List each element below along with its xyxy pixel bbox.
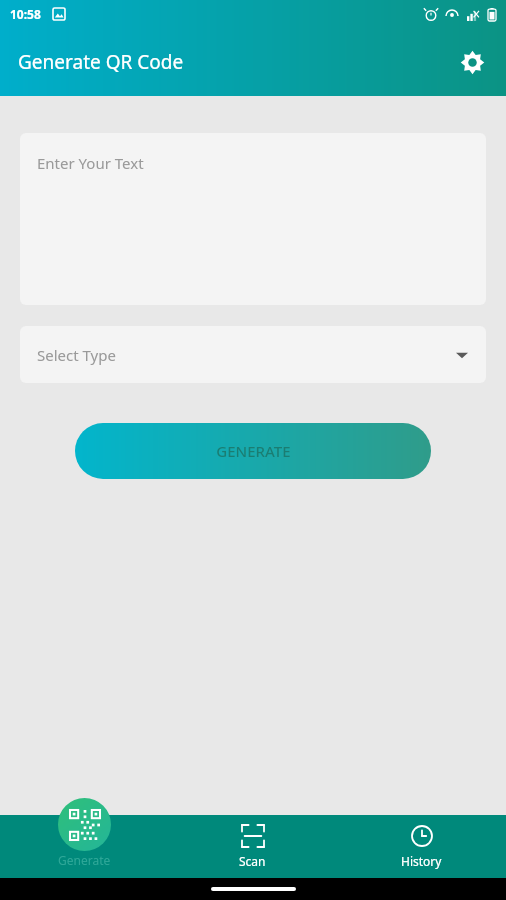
button[interactable]: History (337, 815, 506, 878)
staticText: Enter Your Text (37, 153, 144, 173)
button[interactable]: Enter Your Text (20, 133, 486, 305)
button[interactable]: Generate QR code (58, 798, 111, 851)
staticText: GENERATE (216, 441, 291, 461)
staticText: 10:58 (10, 6, 41, 22)
button[interactable]: GENERATE (75, 423, 431, 479)
staticText: Generate QR Code (18, 49, 184, 75)
button[interactable]: Generate (0, 815, 168, 878)
button[interactable]: Scan (168, 815, 337, 878)
button[interactable]: Settings (452, 42, 492, 82)
staticText: Select Type (37, 345, 116, 365)
staticText: History (401, 853, 442, 869)
button[interactable]: Select Type (20, 326, 486, 383)
staticText: Generate (58, 852, 111, 868)
staticText: Scan (239, 853, 266, 869)
